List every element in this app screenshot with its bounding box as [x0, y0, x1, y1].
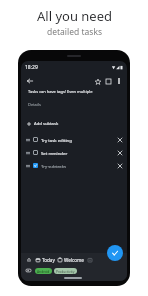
button[interactable]: Tags: [24, 266, 33, 275]
button[interactable]: Welcome: [58, 255, 84, 265]
button[interactable]: Reminder: [24, 255, 33, 264]
button[interactable]: Remove subtask: [115, 161, 124, 170]
button[interactable]: Save task: [107, 245, 123, 261]
button[interactable]: Productivity: [54, 268, 77, 274]
staticText: Productivity: [56, 269, 75, 273]
staticText: Tasks can have tags! Even multiple: [28, 89, 93, 94]
button[interactable]: Today: [36, 255, 55, 265]
button[interactable]: Android: [35, 268, 52, 274]
button[interactable]: Try subtasks: [21, 159, 127, 172]
staticText: Android: [37, 269, 50, 273]
button[interactable]: Priority: [86, 256, 94, 264]
button[interactable]: Remove subtask: [115, 148, 124, 157]
staticText: Try task editing: [41, 137, 72, 143]
button[interactable]: Try task editing: [21, 133, 127, 146]
staticText: Details: [28, 102, 41, 107]
button[interactable]: Set reminder: [21, 146, 127, 159]
staticText: Try subtasks: [41, 163, 66, 169]
button[interactable]: Add subtask: [21, 118, 127, 129]
button[interactable]: Archive: [103, 76, 114, 87]
staticText: All you need: [37, 7, 112, 25]
staticText: Add subtask: [34, 121, 59, 127]
button[interactable]: More options: [114, 76, 124, 86]
button[interactable]: Back: [24, 75, 36, 87]
staticText: detailed tasks: [47, 26, 102, 38]
staticText: Set reminder: [41, 150, 68, 156]
staticText: Welcome: [64, 257, 84, 263]
button[interactable]: Star: [92, 76, 103, 87]
button[interactable]: Remove subtask: [115, 135, 124, 144]
staticText: Today: [42, 257, 55, 263]
staticText: 18:29: [25, 64, 38, 71]
